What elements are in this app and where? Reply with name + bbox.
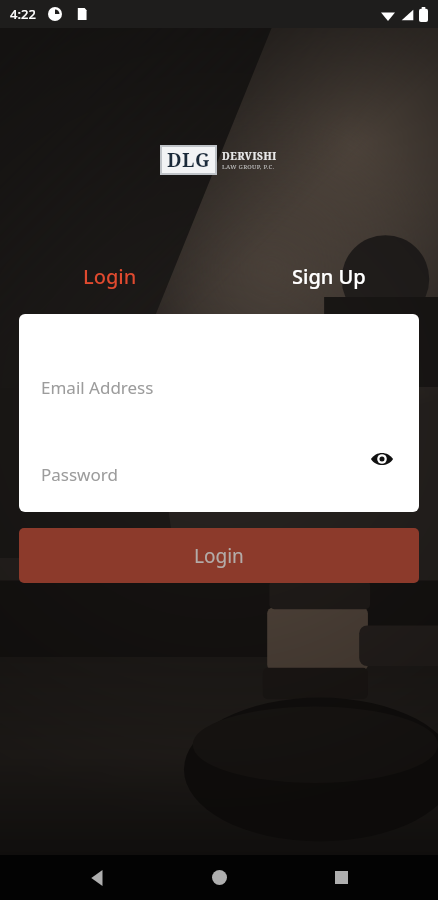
- button[interactable]: Login: [0, 260, 219, 292]
- button[interactable]: Home: [195, 855, 243, 900]
- staticText: Password: [41, 463, 118, 486]
- button[interactable]: Login: [19, 528, 419, 583]
- button[interactable]: Password: [19, 419, 419, 512]
- staticText: 4:22: [10, 5, 36, 23]
- staticText: DERVISHI: [222, 149, 277, 163]
- staticText: Login: [83, 263, 137, 290]
- staticText: Login: [194, 543, 244, 569]
- button[interactable]: Back: [74, 855, 122, 900]
- button[interactable]: Sign Up: [219, 260, 438, 292]
- button[interactable]: Show password: [367, 444, 397, 474]
- staticText: Email Address: [41, 376, 154, 399]
- button[interactable]: Email Address: [19, 314, 419, 419]
- button[interactable]: Recent apps: [317, 855, 365, 900]
- staticText: LAW GROUP, P.C.: [222, 163, 275, 171]
- staticText: Sign Up: [292, 263, 366, 290]
- staticText: DLG: [167, 147, 211, 173]
